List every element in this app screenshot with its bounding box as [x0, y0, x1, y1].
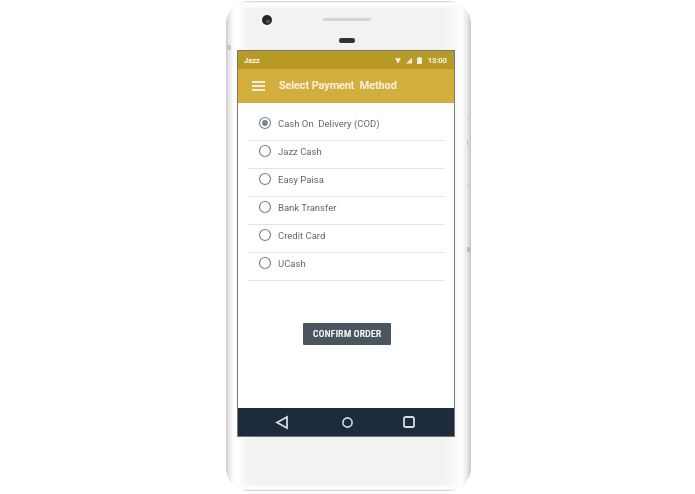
staticText: UCash	[278, 258, 306, 269]
staticText: Cash On Delivery (COD)	[278, 118, 380, 129]
staticText: 13:00	[428, 56, 447, 65]
staticText: Jazz	[244, 56, 260, 65]
staticText: Bank Transfer	[278, 202, 337, 213]
button[interactable]: Home	[331, 408, 363, 436]
button[interactable]: CONFIRM ORDER	[303, 323, 391, 345]
button[interactable]: Credit Card	[238, 225, 454, 252]
staticText: Credit Card	[278, 230, 326, 241]
button[interactable]: UCash	[238, 253, 454, 280]
staticText: Select Payment Method	[279, 79, 397, 92]
staticText: Jazz Cash	[278, 146, 322, 157]
button[interactable]: Menu	[250, 75, 267, 97]
staticText: CONFIRM ORDER	[313, 329, 382, 339]
button[interactable]: Bank Transfer	[238, 197, 454, 224]
button[interactable]: Cash On Delivery (COD)	[238, 113, 454, 140]
button[interactable]: Back	[266, 408, 298, 436]
button[interactable]: Jazz Cash	[238, 141, 454, 168]
button[interactable]: Easy Paisa	[238, 169, 454, 196]
staticText: Easy Paisa	[278, 174, 324, 185]
button[interactable]: Recent apps	[393, 408, 425, 436]
